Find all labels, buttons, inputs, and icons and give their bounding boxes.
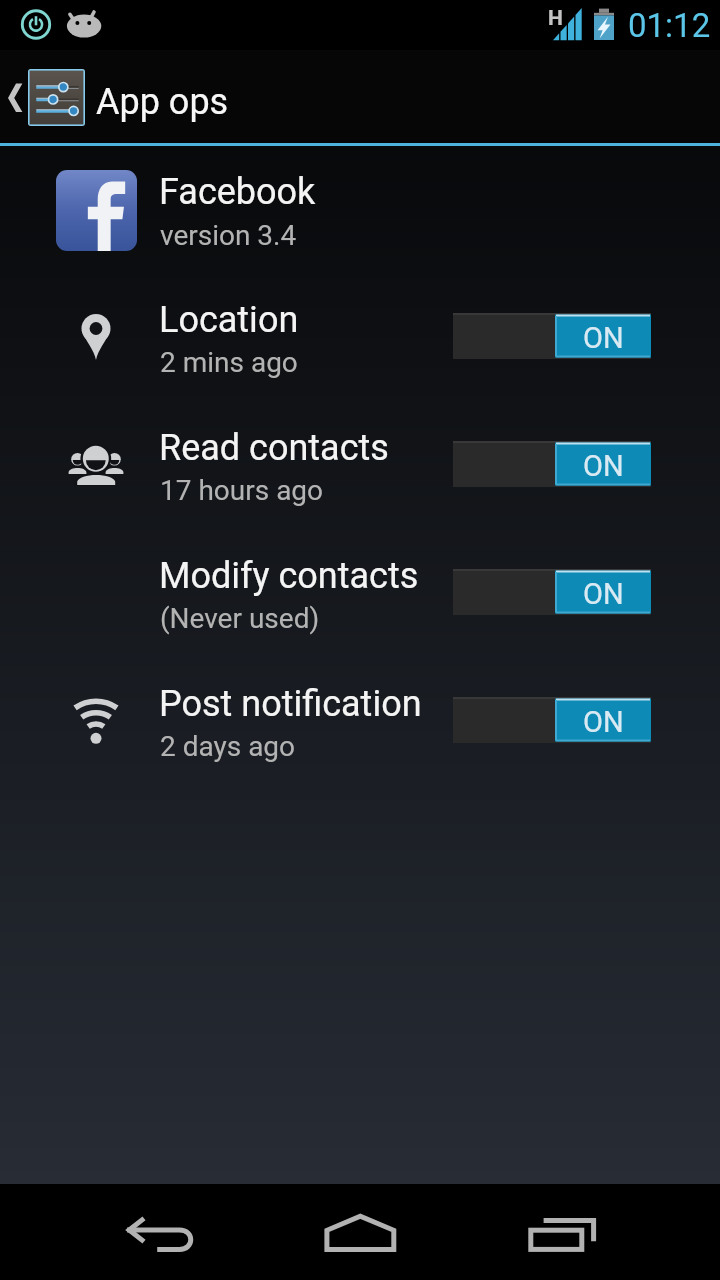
button[interactable]: Modify contacts permission, on [453, 569, 651, 615]
staticText: Location [159, 299, 299, 341]
button[interactable]: Back [80, 1184, 240, 1280]
staticText: Read contacts [159, 427, 389, 469]
button[interactable]: Navigate up, App ops [0, 50, 720, 143]
button[interactable]: Facebook [0, 150, 720, 266]
staticText: 2 days ago [160, 730, 296, 763]
staticText: ON [583, 449, 624, 483]
staticText: H [548, 6, 563, 31]
staticText: (Never used) [160, 602, 320, 635]
staticText: 2 mins ago [160, 346, 298, 379]
button[interactable]: Modify contacts [0, 525, 720, 653]
button[interactable]: Location [0, 269, 720, 397]
staticText: ON [583, 705, 624, 739]
button[interactable]: Recent apps [480, 1184, 640, 1280]
staticText: ON [583, 577, 624, 611]
button[interactable]: Post notification permission, on [453, 697, 651, 743]
staticText: 17 hours ago [160, 474, 324, 507]
button[interactable]: Home [280, 1184, 440, 1280]
button[interactable]: Read contacts permission, on [453, 441, 651, 487]
staticText: ON [583, 321, 624, 355]
staticText: App ops [96, 81, 229, 123]
button[interactable]: Location permission, on [453, 313, 651, 359]
staticText: Facebook [159, 171, 316, 213]
button[interactable]: Read contacts [0, 397, 720, 525]
staticText: 01:12 [628, 6, 711, 45]
staticText: version 3.4 [160, 219, 297, 252]
staticText: Modify contacts [159, 555, 419, 597]
staticText: Post notification [159, 683, 422, 725]
button[interactable]: Post notification [0, 653, 720, 781]
